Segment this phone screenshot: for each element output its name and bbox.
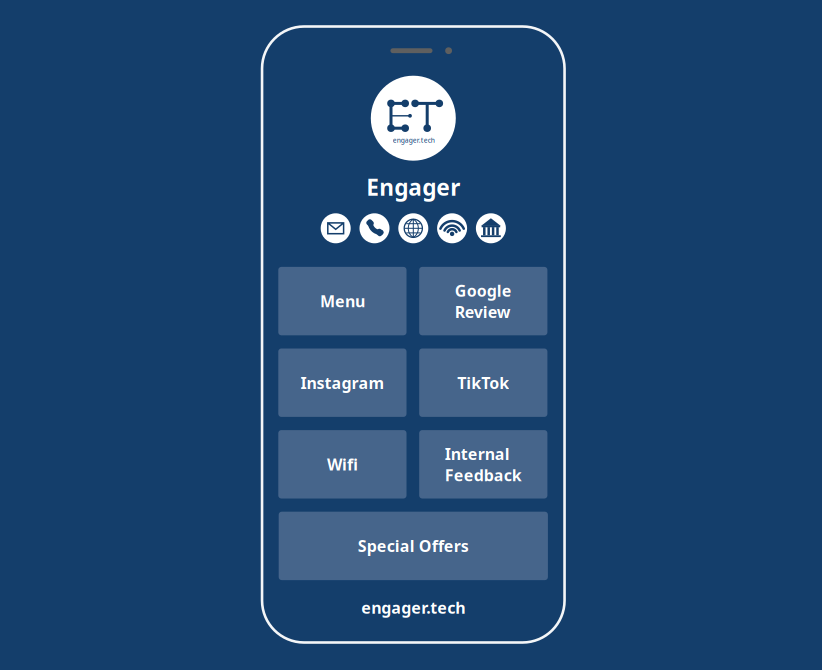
staticText: Wifi	[327, 454, 358, 475]
button[interactable]: Instagram	[278, 348, 406, 417]
staticText: Special Offers	[358, 535, 469, 556]
button[interactable]: Call	[359, 213, 389, 243]
button[interactable]: Internal Feedback	[419, 430, 547, 498]
staticText: Instagram	[300, 372, 384, 393]
staticText: Google Review	[455, 280, 512, 322]
button[interactable]: Website	[398, 213, 428, 243]
button[interactable]: Wi-Fi	[437, 213, 467, 243]
button[interactable]: Wifi	[278, 430, 406, 498]
button[interactable]: Menu	[278, 267, 406, 335]
button[interactable]: Google Review	[419, 267, 547, 335]
staticText: engager.tech	[361, 597, 465, 618]
staticText: Engager	[366, 172, 460, 202]
staticText: engager.tech	[393, 136, 435, 145]
staticText: Internal Feedback	[445, 443, 522, 486]
staticText: TikTok	[457, 372, 509, 393]
staticText: Menu	[320, 290, 365, 312]
button[interactable]: Email	[321, 213, 351, 243]
button[interactable]: TikTok	[419, 348, 547, 417]
button[interactable]: Special Offers	[279, 512, 548, 580]
button[interactable]: Payments	[476, 213, 506, 243]
